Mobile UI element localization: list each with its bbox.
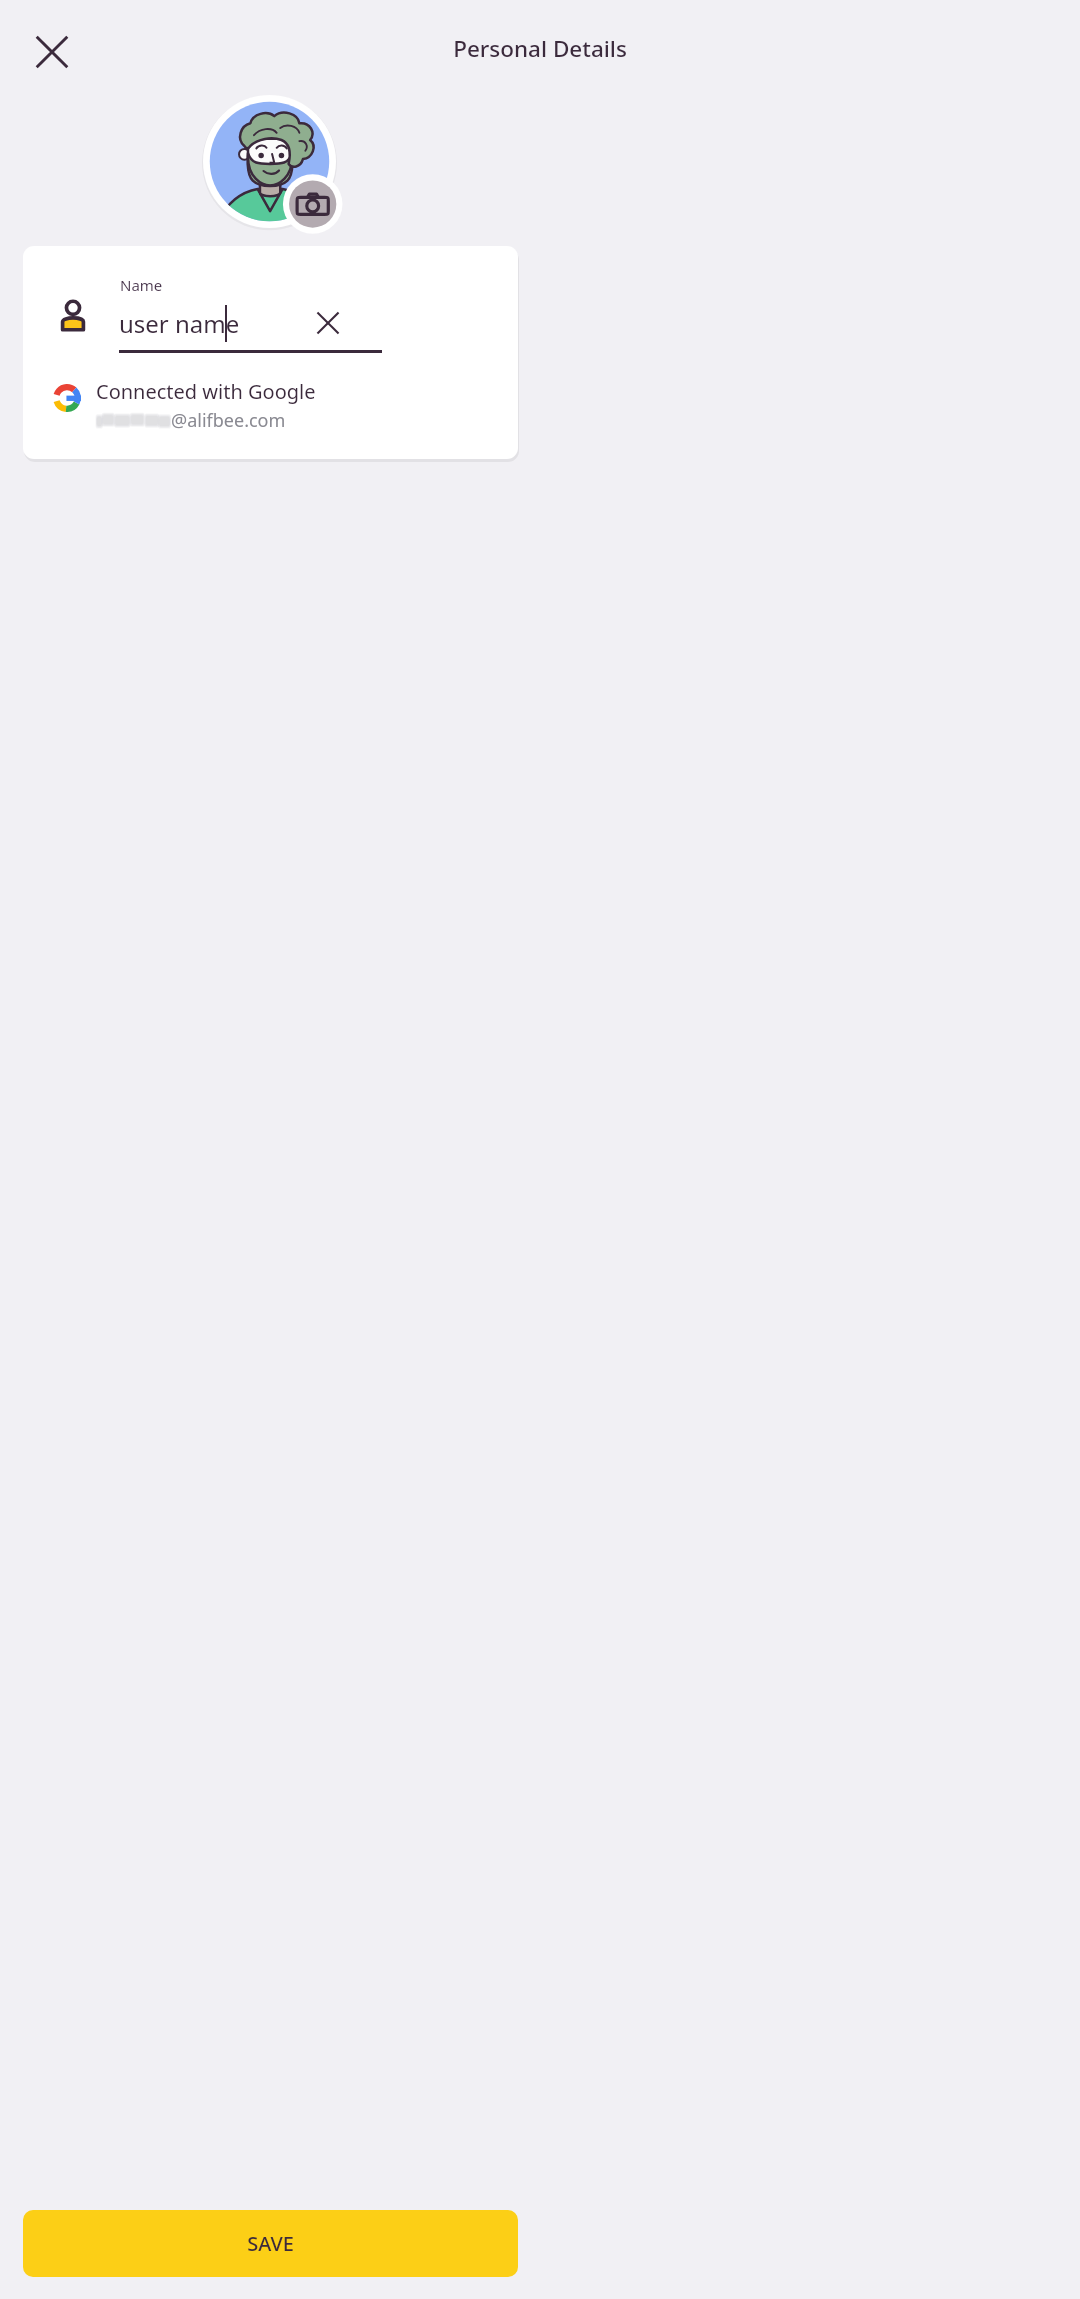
button[interactable]: Close — [26, 26, 78, 78]
staticText: SAVE — [247, 2230, 294, 2257]
staticText: @alifbee.com — [171, 408, 286, 433]
button[interactable]: Connected with Google — [23, 374, 518, 452]
button[interactable]: Clear name — [305, 300, 351, 346]
button[interactable]: SAVE — [23, 2210, 518, 2277]
button[interactable]: Change profile photo — [202, 94, 337, 229]
staticText: Personal Details — [453, 33, 627, 64]
staticText: Connected with Google — [96, 378, 316, 405]
staticText: user name — [119, 307, 240, 340]
button[interactable]: Name — [23, 246, 518, 371]
staticText: Name — [120, 275, 163, 295]
